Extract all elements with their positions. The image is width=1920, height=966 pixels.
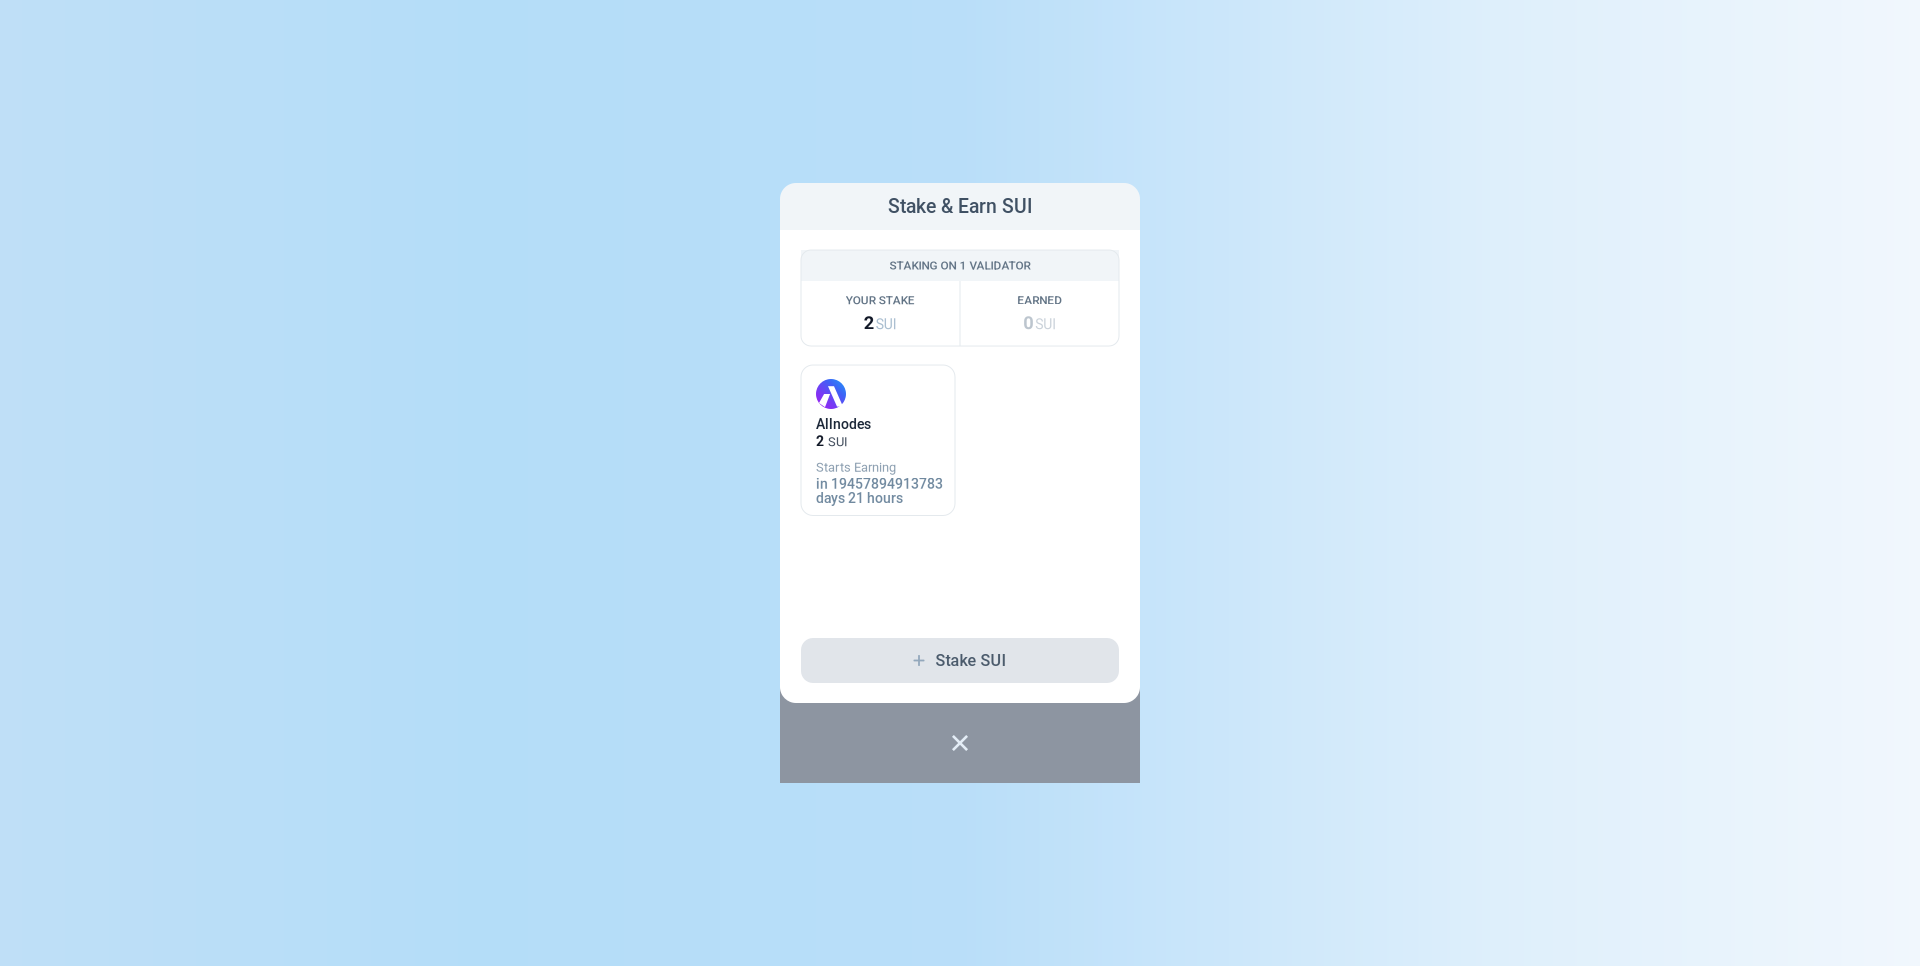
staticText: Stake SUI (935, 651, 1006, 670)
staticText: SUI (876, 316, 897, 333)
staticText: Stake & Earn SUI (888, 195, 1032, 218)
staticText: 0 (1023, 312, 1033, 334)
button[interactable]: Allnodes (801, 365, 955, 515)
staticText: days 21 hours (816, 490, 903, 506)
staticText: 2 (816, 433, 824, 450)
staticText: SUI (828, 434, 848, 449)
button[interactable]: Stake SUI (801, 638, 1119, 683)
staticText: YOUR STAKE (846, 293, 915, 307)
button[interactable]: Close (780, 703, 1140, 783)
staticText: STAKING ON 1 VALIDATOR (889, 259, 1030, 272)
staticText: 2 (864, 312, 874, 334)
staticText: Starts Earning (816, 460, 896, 475)
staticText: Allnodes (816, 416, 871, 432)
staticText: SUI (1035, 316, 1056, 333)
staticText: EARNED (1017, 293, 1062, 307)
staticText: in 19457894913783 (816, 476, 943, 492)
